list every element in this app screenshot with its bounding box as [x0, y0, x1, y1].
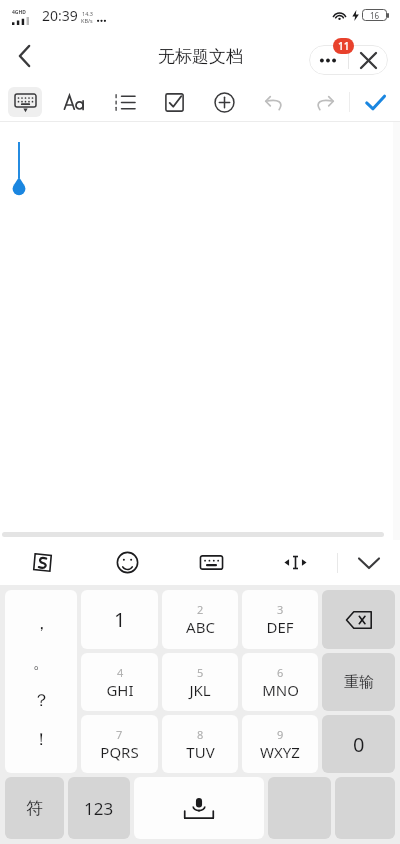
staticText: GHI: [106, 680, 134, 700]
staticText: 重输: [344, 673, 374, 692]
button[interactable]: Done: [350, 82, 400, 122]
button[interactable]: Text format: [49, 82, 99, 122]
button[interactable]: Symbols: [5, 777, 64, 839]
staticText: 1: [114, 606, 126, 633]
button[interactable]: Close: [349, 45, 388, 75]
staticText: KB/s: [81, 17, 93, 24]
button[interactable]: Numbered list: [99, 82, 149, 122]
button[interactable]: Move cursor: [253, 540, 337, 585]
staticText: 4: [117, 665, 124, 680]
button[interactable]: 9 WXYZ: [242, 715, 318, 773]
button[interactable]: 3 DEF: [242, 590, 318, 649]
button[interactable]: Sogou input: [0, 540, 85, 585]
button[interactable]: Emoji: [85, 540, 169, 585]
staticText: ABC: [186, 617, 215, 637]
button[interactable]: More options: [309, 45, 348, 75]
staticText: ？: [33, 690, 50, 711]
staticText: 符: [26, 798, 43, 819]
staticText: 3: [277, 602, 284, 617]
staticText: ！: [33, 729, 50, 750]
staticText: 123: [84, 797, 114, 820]
button[interactable]: Undo: [249, 82, 299, 122]
button[interactable]: 2 ABC: [162, 590, 238, 649]
staticText: 14.3: [82, 10, 93, 17]
staticText: 8: [197, 727, 204, 742]
button[interactable]: Insert: [199, 82, 249, 122]
staticText: 6: [277, 665, 284, 680]
button[interactable]: 8 TUV: [162, 715, 238, 773]
staticText: DEF: [266, 617, 294, 637]
button[interactable]: 1: [81, 590, 158, 649]
staticText: 11: [338, 39, 350, 53]
staticText: 无标题文档: [158, 46, 243, 67]
button[interactable]: Backspace: [322, 590, 395, 649]
button[interactable]: Checklist: [149, 82, 199, 122]
staticText: PQRS: [100, 742, 139, 762]
staticText: TUV: [186, 742, 215, 762]
button[interactable]: Redo: [299, 82, 349, 122]
staticText: 4GHD: [12, 9, 26, 16]
button[interactable]: Numbers: [68, 777, 130, 839]
button[interactable]: Punctuation: [5, 590, 77, 773]
button[interactable]: Voice input: [134, 777, 264, 839]
button[interactable]: 7 PQRS: [81, 715, 158, 773]
button[interactable]: Keyboard: [0, 82, 49, 122]
button[interactable]: Switch keyboard: [169, 540, 253, 585]
staticText: 2: [197, 602, 204, 617]
button[interactable]: 5 JKL: [162, 653, 238, 711]
button[interactable]: 6 MNO: [242, 653, 318, 711]
staticText: 5: [197, 665, 204, 680]
staticText: 9: [277, 727, 284, 742]
button[interactable]: Hide keyboard: [338, 540, 400, 585]
staticText: 16: [370, 10, 380, 21]
button[interactable]: Back: [0, 32, 48, 80]
staticText: 20:39: [42, 6, 78, 25]
button[interactable]: Re-enter: [322, 653, 395, 711]
staticText: 7: [116, 727, 123, 742]
staticText: WXYZ: [260, 742, 300, 762]
staticText: MNO: [262, 680, 299, 700]
staticText: ，: [33, 613, 50, 634]
staticText: 。: [33, 652, 50, 673]
staticText: 0: [353, 731, 365, 758]
staticText: JKL: [189, 680, 211, 700]
button[interactable]: 0: [322, 715, 395, 773]
button[interactable]: [0, 122, 400, 540]
button[interactable]: 4 GHI: [81, 653, 158, 711]
